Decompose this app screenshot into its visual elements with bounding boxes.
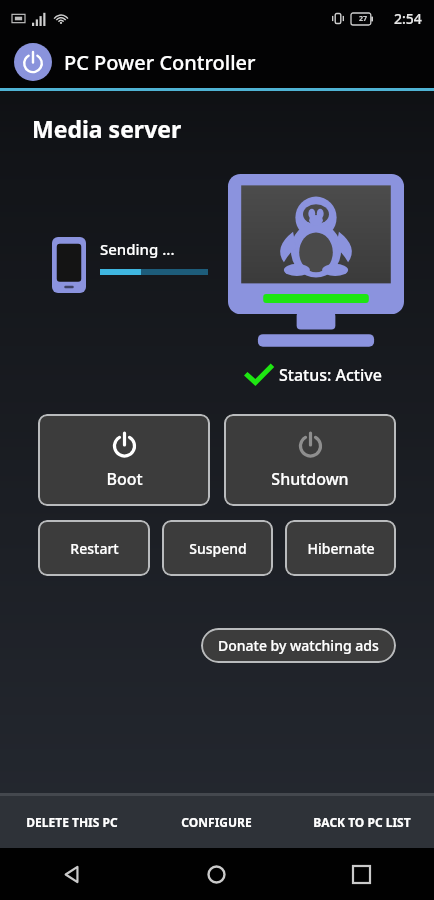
button[interactable]: Hibernate — [285, 520, 396, 576]
staticText: Hibernate — [307, 539, 375, 558]
button[interactable]: Back — [0, 848, 144, 900]
staticText: Restart — [70, 539, 119, 558]
staticText: Boot — [106, 468, 143, 490]
button[interactable]: DELETE THIS PC — [0, 796, 144, 848]
button[interactable]: Donate by watching ads — [201, 628, 396, 663]
staticText: Media server — [32, 113, 182, 144]
button[interactable]: Recents — [289, 848, 434, 900]
button[interactable]: Boot — [38, 414, 210, 506]
staticText: Donate by watching ads — [218, 636, 379, 655]
staticText: Status: Active — [279, 364, 382, 386]
staticText: Suspend — [189, 539, 247, 558]
button[interactable]: CONFIGURE — [144, 796, 289, 848]
button[interactable]: Home — [144, 848, 289, 900]
staticText: BACK TO PC LIST — [313, 814, 411, 830]
staticText: DELETE THIS PC — [26, 814, 118, 830]
staticText: Sending ... — [100, 239, 175, 259]
staticText: PC Power Controller — [64, 49, 256, 76]
button[interactable]: Shutdown — [224, 414, 396, 506]
button[interactable]: Suspend — [162, 520, 273, 576]
staticText: Shutdown — [271, 468, 349, 490]
staticText: CONFIGURE — [181, 814, 252, 830]
button[interactable]: Restart — [38, 520, 150, 576]
staticText: 27 — [359, 14, 368, 24]
staticText: 2:54 — [394, 9, 422, 28]
button[interactable]: BACK TO PC LIST — [289, 796, 434, 848]
